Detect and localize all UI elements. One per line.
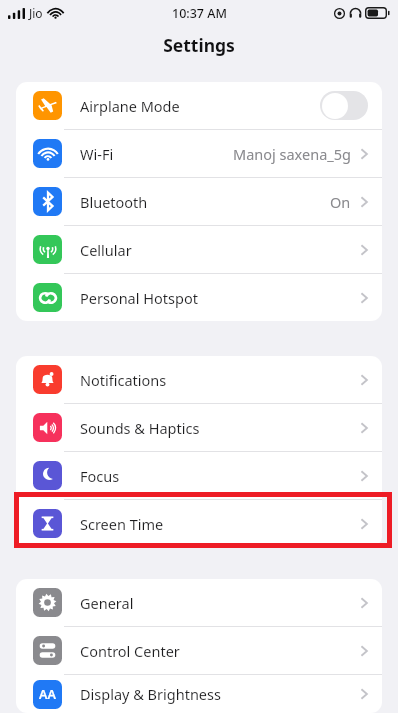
staticText: Airplane Mode (80, 96, 320, 116)
staticText: On (330, 192, 351, 212)
staticText: AA (39, 686, 56, 703)
button[interactable]: Wi-Fi (16, 130, 382, 177)
button[interactable]: Bluetooth (16, 178, 382, 225)
staticText: Jio (29, 5, 43, 21)
staticText: Screen Time (80, 514, 360, 534)
button[interactable]: Control Center (16, 627, 382, 674)
button[interactable]: Airplane Mode toggle, off (320, 91, 368, 120)
staticText: Bluetooth (80, 192, 330, 212)
staticText: Control Center (80, 641, 360, 661)
button[interactable]: Sounds & Haptics (16, 404, 382, 451)
button[interactable]: Notifications (16, 356, 382, 403)
button[interactable]: Cellular (16, 226, 382, 273)
staticText: Display & Brightness (80, 684, 360, 704)
button[interactable]: Airplane Mode (16, 82, 382, 129)
staticText: Sounds & Haptics (80, 418, 360, 438)
button[interactable]: Personal Hotspot (16, 274, 382, 321)
staticText: Manoj saxena_5g (233, 144, 351, 164)
button[interactable]: Screen Time (16, 500, 382, 547)
staticText: Settings (163, 33, 235, 57)
button[interactable]: General (16, 579, 382, 626)
staticText: Notifications (80, 370, 360, 390)
staticText: 10:37 AM (172, 5, 227, 22)
button[interactable]: Focus (16, 452, 382, 499)
staticText: Wi-Fi (80, 144, 233, 164)
staticText: Personal Hotspot (80, 288, 360, 308)
staticText: Cellular (80, 240, 360, 260)
button[interactable]: AA (16, 675, 382, 713)
staticText: Focus (80, 466, 360, 486)
staticText: General (80, 593, 360, 613)
